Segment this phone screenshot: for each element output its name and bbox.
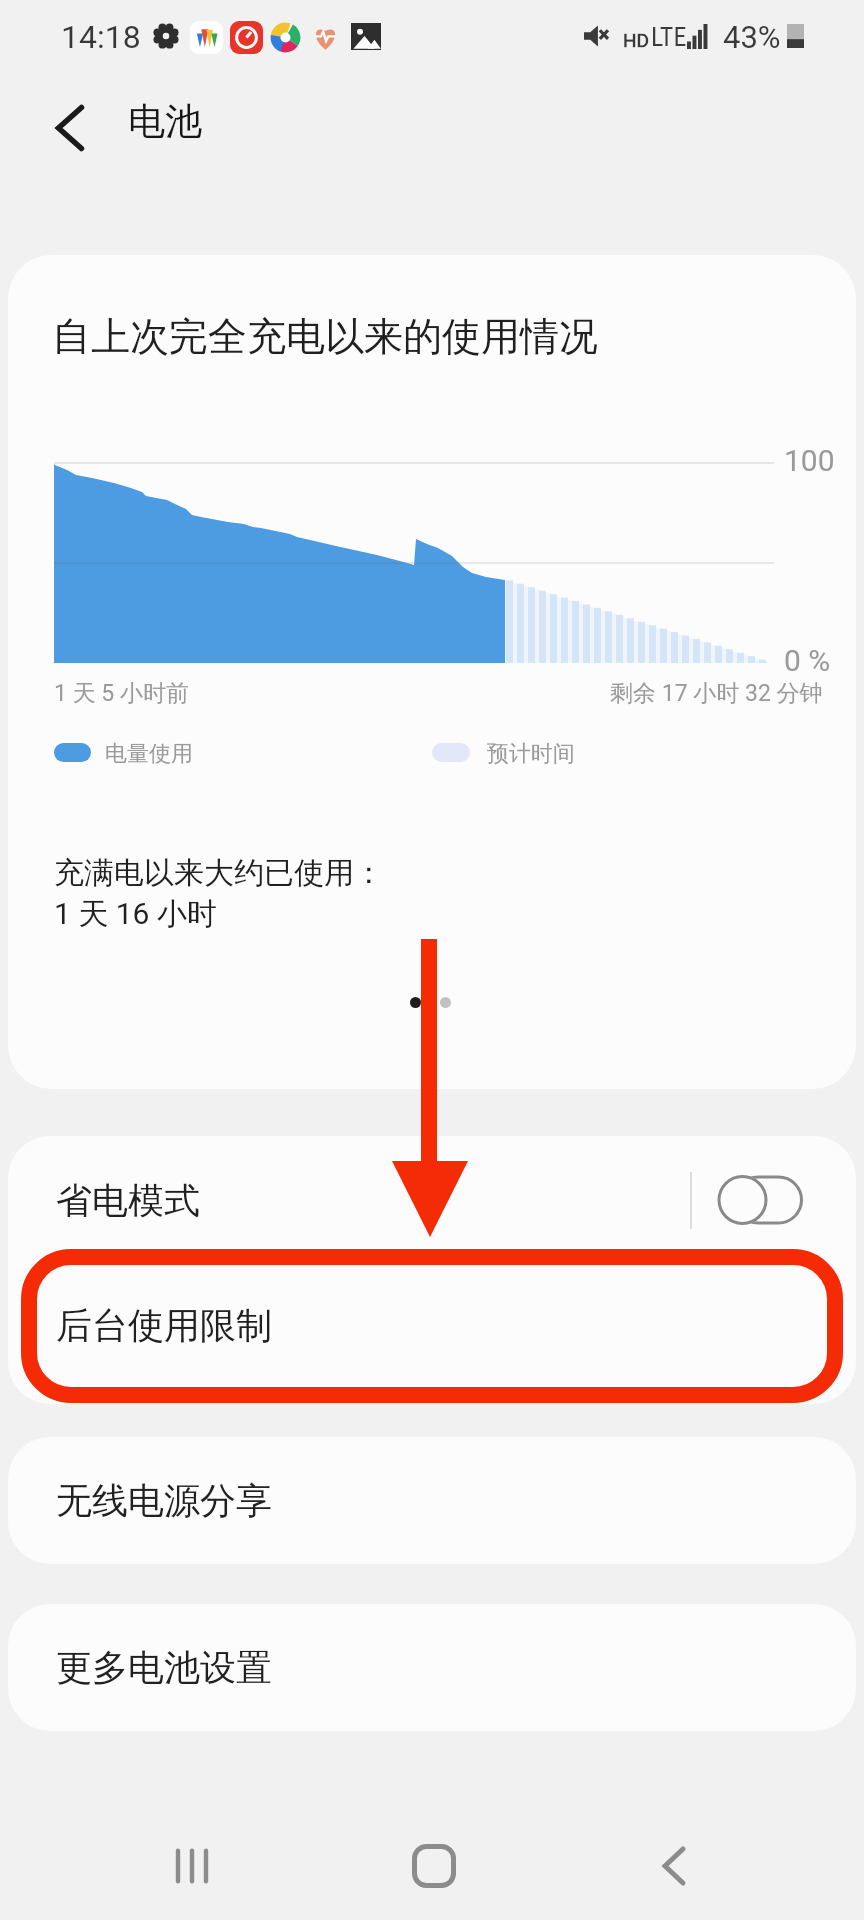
staticText: LTE — [651, 22, 687, 52]
button[interactable]: Back — [594, 1806, 754, 1920]
staticText: 100 — [784, 443, 835, 478]
button[interactable]: 省电模式 — [8, 1136, 856, 1264]
staticText: 14:18 — [61, 18, 141, 56]
staticText: 无线电源分享 — [56, 1478, 272, 1523]
staticText: 充满电以来大约已使用： — [54, 854, 384, 892]
button[interactable]: 自上次完全充电以来的使用情况 — [8, 255, 856, 1089]
staticText: 电池 — [128, 98, 202, 145]
staticText: 后台使用限制 — [56, 1303, 272, 1348]
staticText: 预计时间 — [487, 740, 575, 768]
button[interactable]: Power saving mode toggle, off — [717, 1174, 803, 1226]
staticText: 1 天 5 小时前 — [54, 679, 189, 708]
button[interactable]: 后台使用限制 — [8, 1261, 856, 1389]
staticText: 更多电池设置 — [56, 1645, 272, 1690]
button[interactable]: 更多电池设置 — [8, 1604, 856, 1731]
button[interactable]: Back — [28, 86, 112, 170]
staticText: 省电模式 — [56, 1178, 200, 1223]
button[interactable]: Recents — [112, 1806, 272, 1920]
button[interactable]: 无线电源分享 — [8, 1437, 856, 1564]
staticText: 43% — [723, 19, 781, 55]
staticText: 0 % — [784, 643, 831, 678]
staticText: HD — [623, 29, 650, 51]
button[interactable]: Home — [354, 1806, 514, 1920]
staticText: 1 天 16 小时 — [54, 895, 217, 933]
staticText: 自上次完全充电以来的使用情况 — [52, 312, 598, 361]
staticText: 剩余 17 小时 32 分钟 — [610, 679, 823, 708]
staticText: 电量使用 — [105, 740, 193, 768]
